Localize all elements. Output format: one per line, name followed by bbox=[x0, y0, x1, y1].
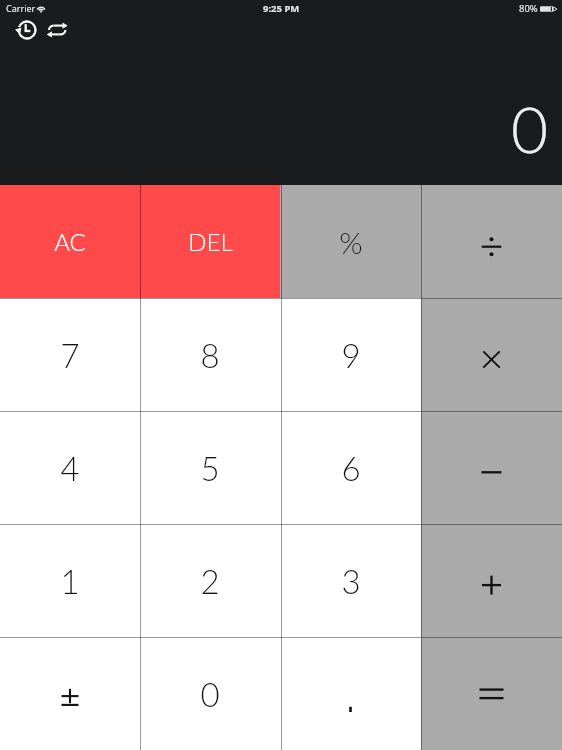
staticText: 5 bbox=[200, 448, 220, 488]
staticText: DEL bbox=[188, 227, 233, 256]
button[interactable]: Multiply bbox=[421, 298, 562, 411]
staticText: 2 bbox=[200, 561, 220, 601]
button[interactable]: Plus minus bbox=[0, 637, 140, 750]
staticText: % bbox=[339, 224, 363, 260]
staticText: 1 bbox=[60, 561, 80, 601]
button[interactable]: AC bbox=[0, 185, 140, 298]
button[interactable]: 5 bbox=[140, 411, 280, 524]
staticText: 9 bbox=[341, 335, 361, 375]
staticText: 8 bbox=[200, 335, 220, 375]
button[interactable]: 8 bbox=[140, 298, 280, 411]
button[interactable]: 4 bbox=[0, 411, 140, 524]
staticText: AC bbox=[54, 227, 86, 256]
button[interactable]: % bbox=[280, 185, 421, 298]
button[interactable]: Add bbox=[421, 524, 562, 637]
staticText: 9:25 PM bbox=[263, 2, 300, 15]
button[interactable]: Subtract bbox=[421, 411, 562, 524]
button[interactable]: Equals bbox=[421, 637, 562, 750]
staticText: 6 bbox=[341, 448, 361, 488]
staticText: 4 bbox=[60, 448, 80, 488]
button[interactable]: Divide bbox=[421, 185, 562, 298]
button[interactable]: 0 bbox=[140, 637, 280, 750]
button[interactable]: 2 bbox=[140, 524, 280, 637]
button[interactable]: 1 bbox=[0, 524, 140, 637]
button[interactable]: 7 bbox=[0, 298, 140, 411]
button[interactable]: 9 bbox=[280, 298, 421, 411]
button[interactable]: History bbox=[12, 15, 42, 45]
button[interactable]: DEL bbox=[140, 185, 280, 298]
staticText: Carrier bbox=[6, 2, 36, 14]
staticText: 80% bbox=[519, 2, 538, 15]
button[interactable]: Decimal point bbox=[280, 637, 421, 750]
button[interactable]: 6 bbox=[280, 411, 421, 524]
button[interactable]: 3 bbox=[280, 524, 421, 637]
staticText: 7 bbox=[60, 335, 80, 375]
staticText: 0 bbox=[200, 674, 220, 714]
staticText: 0 bbox=[511, 90, 549, 167]
button[interactable]: Swap units bbox=[42, 15, 72, 45]
staticText: 3 bbox=[341, 561, 361, 601]
